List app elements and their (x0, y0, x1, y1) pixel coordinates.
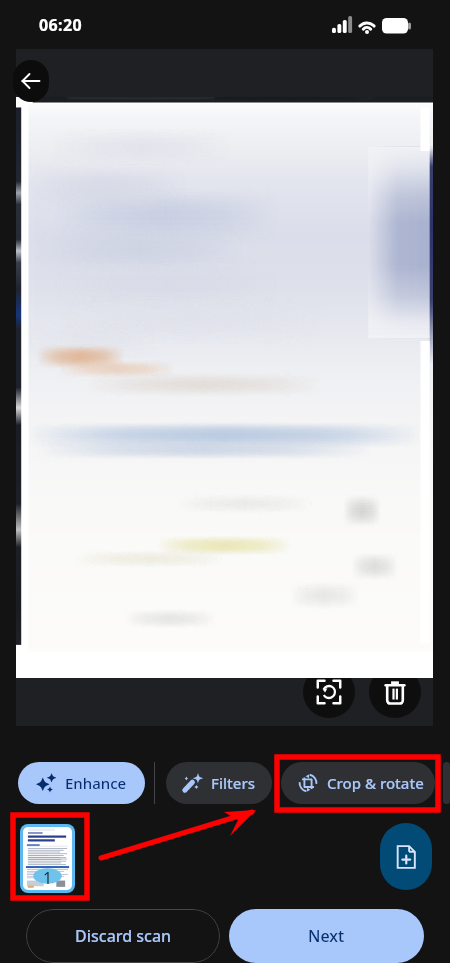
staticText: Enhance (65, 773, 127, 793)
button[interactable]: Crop & rotate (281, 762, 435, 804)
button[interactable]: Page 1 thumbnail (20, 824, 75, 893)
staticText: Discard scan (75, 925, 172, 947)
button[interactable]: Discard scan (26, 909, 220, 963)
button[interactable]: Filters (166, 762, 272, 804)
button[interactable]: Back (13, 60, 49, 102)
button[interactable]: Enhance (18, 762, 145, 804)
button[interactable]: Delete (369, 666, 421, 718)
staticText: Filters (211, 773, 256, 793)
staticText: 1 (43, 867, 53, 889)
staticText: Crop & rotate (327, 773, 424, 793)
button[interactable]: More (443, 762, 450, 804)
staticText: 06:20 (39, 14, 83, 36)
staticText: Next (308, 925, 345, 947)
button[interactable]: Add page (380, 823, 432, 890)
button[interactable]: Next (229, 909, 424, 963)
button[interactable]: Rescan (303, 666, 355, 718)
